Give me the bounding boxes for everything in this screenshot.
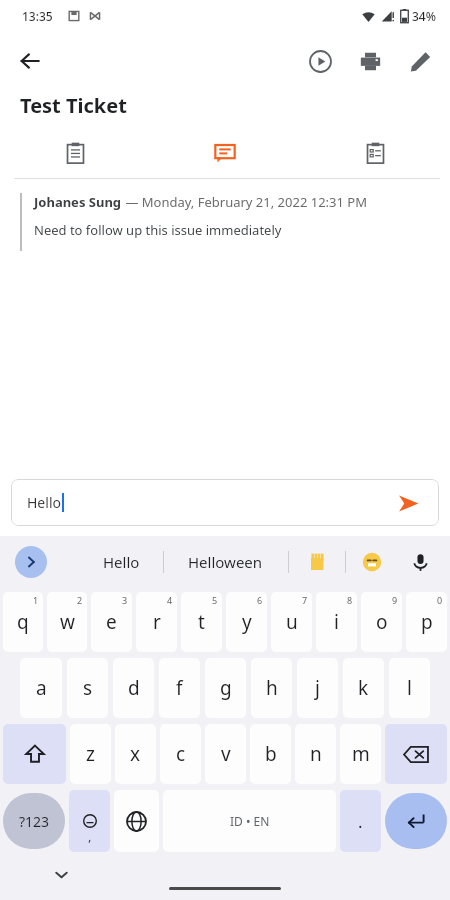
staticText: Test Ticket [20,92,127,119]
staticText: k [358,675,369,701]
button[interactable]: Change language [114,790,159,852]
staticText: j [315,675,320,701]
staticText: 13:35 [22,8,53,24]
button[interactable]: f [159,658,200,718]
staticText: Johanes Sung [34,193,122,211]
staticText: q [17,609,29,635]
button[interactable]: Voice input [402,544,438,580]
staticText: a [36,675,47,701]
staticText: — Monday, February 21, 2022 12:31 PM [122,193,367,211]
button[interactable]: Play [300,41,340,81]
button[interactable]: Back [8,39,52,83]
staticText: o [376,609,388,635]
staticText: e [106,609,117,635]
button[interactable]: y [226,592,267,652]
staticText: 8 [347,594,353,606]
staticText: Helloween [188,552,263,572]
staticText: t [198,609,205,635]
staticText: c [176,741,186,767]
staticText: 6 [257,594,263,606]
button[interactable]: g [205,658,246,718]
button[interactable]: . [340,790,381,852]
staticText: x [130,741,141,767]
button[interactable]: e [91,592,132,652]
button[interactable]: d [113,658,154,718]
staticText: Hello [27,493,61,512]
button[interactable]: x [115,724,156,784]
staticText: r [153,609,161,635]
staticText: 0 [437,594,443,606]
button[interactable]: k [343,658,384,718]
button[interactable]: m [340,724,381,784]
staticText: u [286,609,298,635]
staticText: i [334,609,339,635]
button[interactable]: Backspace [385,724,447,784]
button[interactable]: c [160,724,201,784]
staticText: p [421,609,433,635]
button[interactable]: Hello [62,542,180,582]
staticText: 2 [77,594,83,606]
staticText: y [242,609,252,635]
staticText: 1 [33,594,39,606]
button[interactable]: v [205,724,246,784]
button[interactable]: Helloween [166,542,284,582]
staticText: g [220,675,232,701]
staticText: z [86,741,95,767]
staticText: ?123 [19,812,50,831]
staticText: 34% [412,8,436,24]
button[interactable]: a [20,658,62,718]
staticText: 9 [392,594,398,606]
button[interactable]: Hide keyboard [45,858,77,890]
button[interactable]: Edit [400,41,440,81]
staticText: ID • EN [230,813,270,829]
staticText: m [352,741,370,767]
button[interactable]: j [297,658,338,718]
button[interactable]: r [136,592,177,652]
staticText: 5 [212,594,218,606]
button[interactable]: Comments [150,137,300,169]
staticText: n [310,741,322,767]
button[interactable]: Enter [385,793,447,849]
staticText: f [176,675,183,701]
staticText: 7 [302,594,308,606]
button[interactable]: o [361,592,402,652]
button[interactable]: b [250,724,291,784]
button[interactable]: z [70,724,111,784]
staticText: Need to follow up this issue immediately [34,221,282,239]
button[interactable]: q [3,592,43,652]
staticText: h [266,675,278,701]
staticText: b [265,741,277,767]
button[interactable]: Print [350,41,390,81]
staticText: v [221,741,231,767]
staticText: Hello [103,552,140,572]
button[interactable]: l [389,658,430,718]
button[interactable]: t [181,592,222,652]
button[interactable]: Wave emoji [300,545,334,579]
button[interactable]: i [316,592,357,652]
button[interactable]: Shift [3,724,66,784]
button[interactable]: Hello [11,479,439,526]
staticText: s [83,675,93,701]
button[interactable]: More suggestions [15,546,47,578]
button[interactable]: u [271,592,312,652]
button[interactable]: Emoji and comma [69,790,110,852]
staticText: w [60,609,75,635]
button[interactable]: Smile emoji [355,545,389,579]
staticText: l [407,675,412,701]
button[interactable]: w [47,592,87,652]
staticText: d [128,675,140,701]
button[interactable]: ID • EN [163,790,336,852]
button[interactable]: h [251,658,292,718]
staticText: 4 [167,594,173,606]
button[interactable]: ?123 [3,793,65,849]
button[interactable]: s [67,658,108,718]
button[interactable]: Tasks [300,137,450,169]
staticText: . [358,810,363,833]
staticText: 3 [122,594,128,606]
button[interactable]: Send [393,488,423,518]
button[interactable]: p [406,592,447,652]
button[interactable]: Details [0,137,150,169]
button[interactable]: n [295,724,336,784]
staticText: , [88,827,92,845]
